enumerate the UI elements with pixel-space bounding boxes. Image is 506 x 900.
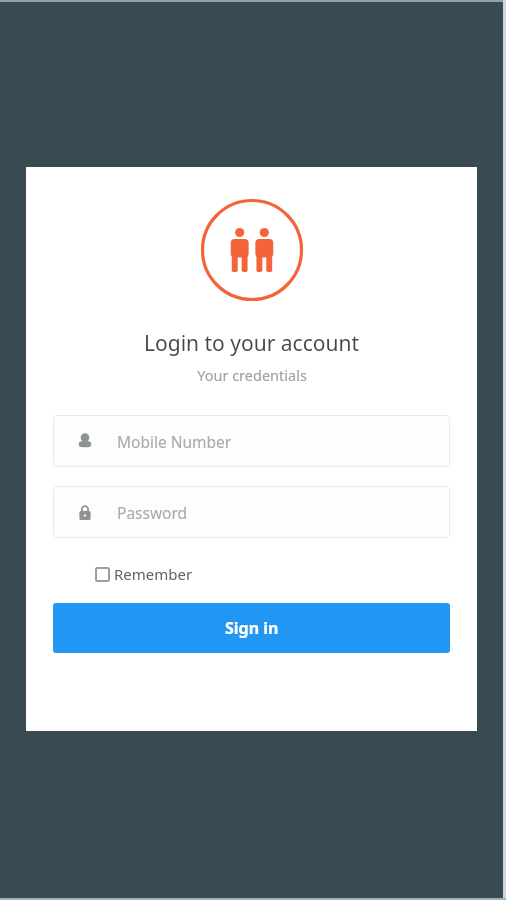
staticText: Mobile Number: [117, 431, 232, 452]
other: Password: [75, 502, 95, 522]
button[interactable]: Password: [53, 486, 450, 538]
staticText: Remember: [114, 564, 193, 584]
staticText: Your credentials: [197, 365, 307, 385]
staticText: Password: [117, 502, 188, 523]
staticText: Sign in: [225, 617, 279, 639]
other: Mobile Number: [75, 431, 95, 451]
button[interactable]: Sign in: [53, 603, 450, 653]
staticText: Login to your account: [144, 329, 359, 358]
button[interactable]: Remember: [95, 559, 450, 589]
button[interactable]: Mobile Number: [53, 415, 450, 467]
